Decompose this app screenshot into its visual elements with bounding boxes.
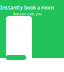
staticText: Instantly book a room bbox=[0, 4, 54, 11]
button[interactable] bbox=[6, 55, 26, 60]
staticText: that just suits you bbox=[12, 11, 41, 16]
